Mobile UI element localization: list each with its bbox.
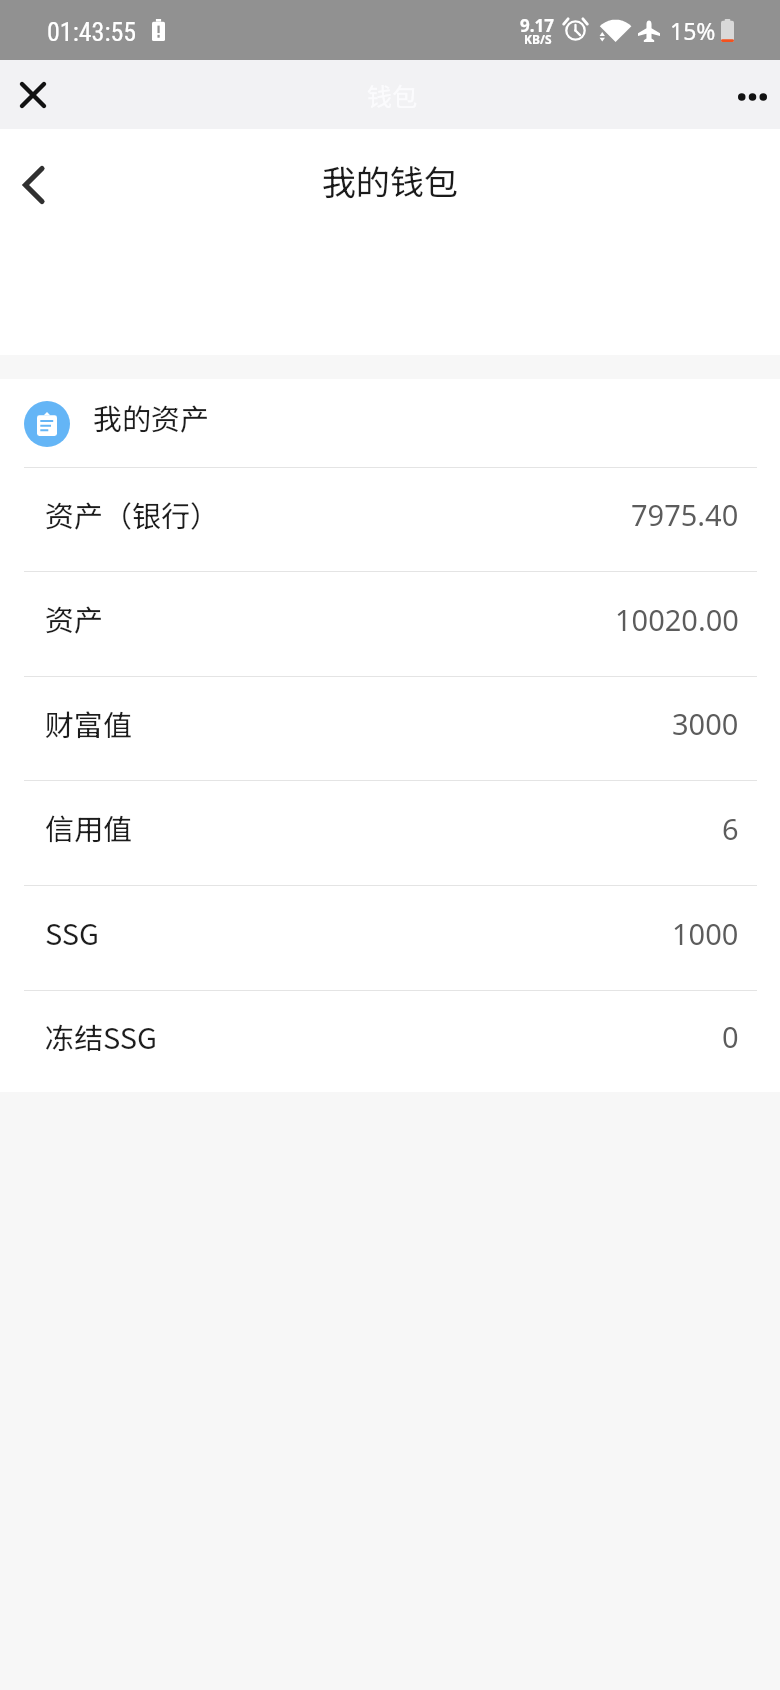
staticText: 我的资产 xyxy=(93,396,210,438)
staticText: SSG xyxy=(45,911,100,953)
staticText: 我的钱包 xyxy=(322,156,458,205)
button[interactable]: SSG xyxy=(0,886,780,990)
button[interactable]: 资产 xyxy=(0,572,780,676)
staticText: 01:43:55 xyxy=(47,17,137,47)
staticText: 信用值 xyxy=(45,806,133,848)
staticText: 10020.00 xyxy=(615,600,739,639)
staticText: 资产（银行） xyxy=(45,493,220,535)
button[interactable]: 财富值 xyxy=(0,677,780,780)
staticText: 钱包 xyxy=(367,77,418,113)
button[interactable]: 冻结SSG xyxy=(0,991,780,1092)
staticText: 6 xyxy=(722,809,739,848)
staticText: 财富值 xyxy=(45,702,133,744)
button[interactable]: Back xyxy=(0,135,66,235)
staticText: 15% xyxy=(670,15,716,46)
staticText: 3000 xyxy=(672,704,739,743)
staticText: 9.17 xyxy=(520,14,554,37)
staticText: KB/S xyxy=(524,31,552,47)
staticText: 资产 xyxy=(45,597,104,639)
button[interactable]: 信用值 xyxy=(0,781,780,885)
staticText: 1000 xyxy=(672,914,739,953)
staticText: 0 xyxy=(722,1017,739,1056)
staticText: 冻结SSG xyxy=(45,1015,158,1057)
button[interactable]: Close xyxy=(0,60,66,129)
button[interactable]: More options xyxy=(725,60,780,129)
button[interactable]: 资产（银行） xyxy=(0,468,780,571)
staticText: 7975.40 xyxy=(631,495,739,534)
